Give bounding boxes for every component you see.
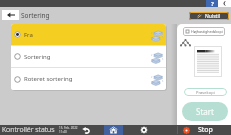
button[interactable]: Roteret sortering [11,68,166,90]
button[interactable]: Kontrollér status [0,125,81,135]
button[interactable]: Settings [134,125,153,135]
staticText: Nulstil [205,13,220,20]
button[interactable]: Nulstil [189,12,229,20]
staticText: Fra [24,31,33,39]
staticText: 11:40 [59,130,67,134]
button[interactable]: Help [206,0,218,7]
staticText: 15. Feb. 2022 [59,126,78,130]
staticText: Prøvekopi [196,90,215,95]
staticText: Start [196,106,214,117]
staticText: Sortering [24,53,51,61]
button[interactable]: Start [182,102,228,121]
button[interactable]: Sortering [11,46,166,67]
button[interactable]: Fra [11,24,166,45]
staticText: Stop [198,125,213,135]
staticText: Højhastighedskopi [191,29,223,34]
staticText: Roteret sortering [24,75,73,83]
button[interactable]: Back [2,10,19,20]
button[interactable]: Højhastighedskopi [183,27,225,36]
staticText: Kontrollér status [2,125,55,135]
staticText: Sortering [21,11,50,20]
button[interactable]: Prøvekopi [184,88,227,96]
staticText: ? [211,0,214,7]
button[interactable]: Power [218,0,231,7]
button[interactable]: Back [77,125,95,135]
button[interactable]: Stop [178,125,231,135]
button[interactable]: Home [104,125,123,135]
